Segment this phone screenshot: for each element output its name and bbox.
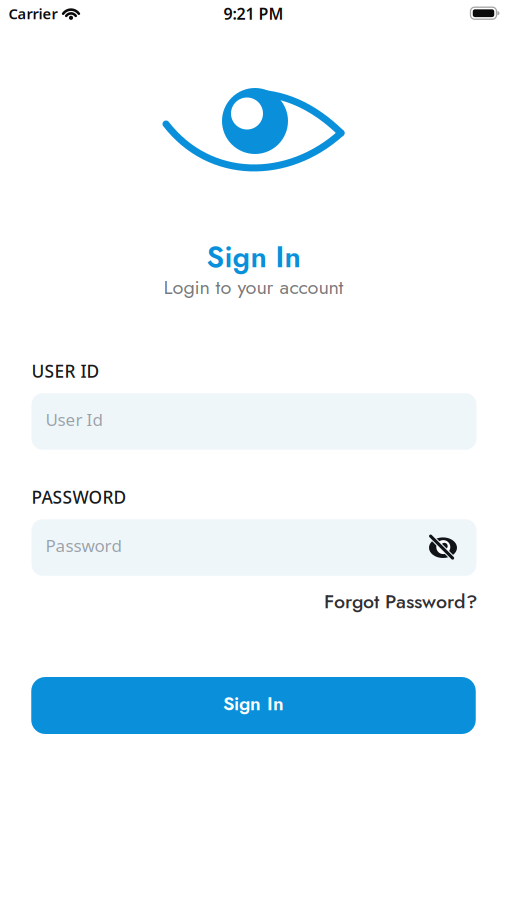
button[interactable]: User Id (31, 393, 476, 450)
button[interactable]: Sign In (31, 677, 476, 734)
staticText: USER ID (31, 359, 99, 382)
staticText: 9:21 PM (223, 3, 283, 24)
staticText: Carrier (8, 4, 57, 23)
button[interactable]: Password (31, 519, 476, 576)
staticText: Sign In (206, 236, 300, 278)
staticText: Sign In (223, 690, 284, 717)
staticText: Login to your account (163, 273, 343, 301)
button[interactable]: Show password (425, 529, 461, 565)
staticText: Forgot Password? (324, 587, 477, 616)
button[interactable]: Forgot Password? (324, 587, 477, 616)
staticText: Password (45, 534, 121, 557)
staticText: User Id (45, 408, 102, 431)
staticText: PASSWORD (31, 485, 126, 508)
